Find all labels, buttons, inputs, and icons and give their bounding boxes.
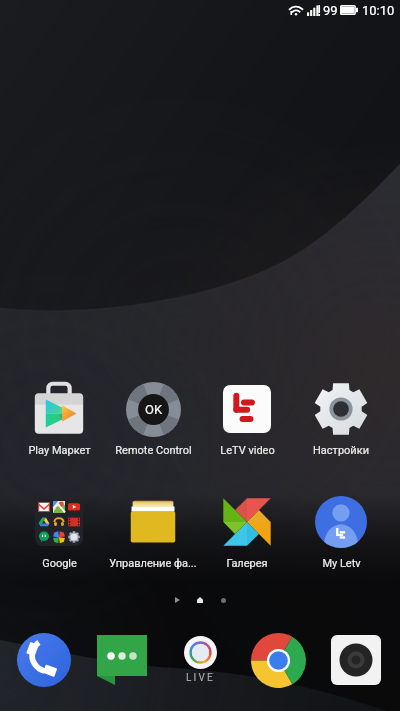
button[interactable]: Настройки [294,381,388,463]
button[interactable]: Previous page [169,592,185,608]
staticText: My Letv [322,557,361,570]
staticText: LIVE [186,672,215,684]
staticText: Google [42,557,77,570]
button[interactable]: Messages [83,624,161,696]
button[interactable]: My Letv [294,494,388,576]
button[interactable]: LIVE [161,624,239,696]
staticText: 99 [323,3,338,18]
staticText: 10:10 [362,3,395,18]
button[interactable]: OK [106,381,200,463]
staticText: OK [145,402,163,417]
button[interactable]: Галерея [200,494,294,576]
button[interactable]: Play Маркет [12,381,106,463]
button[interactable]: Phone [5,624,83,696]
staticText: Remote Control [115,444,192,457]
staticText: Настройки [313,444,369,457]
button[interactable]: Google [12,494,106,576]
button[interactable]: Chrome [239,624,317,696]
button[interactable]: LeTV video [200,381,294,463]
button[interactable]: Управление фа... [106,494,200,576]
button[interactable]: Camera [317,624,395,696]
staticText: Галерея [226,557,268,570]
staticText: LeTV video [220,444,275,457]
staticText: Play Маркет [28,444,91,457]
button[interactable]: Home page [192,592,208,608]
button[interactable]: Next page [215,592,231,608]
staticText: Управление фа... [109,557,197,570]
